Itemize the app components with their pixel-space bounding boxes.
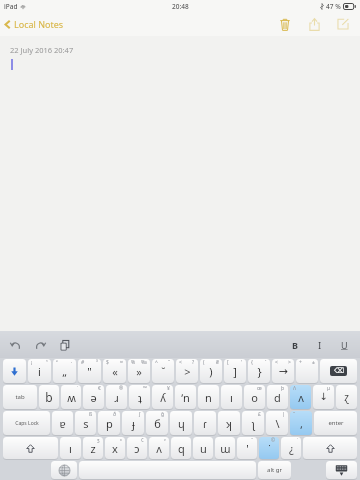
button[interactable]: q xyxy=(171,437,191,459)
staticText: ˣ xyxy=(120,437,122,444)
staticText: } xyxy=(257,364,262,379)
button[interactable]: New note xyxy=(331,12,355,36)
button[interactable]: n xyxy=(198,385,219,409)
button[interactable]: Share xyxy=(302,12,326,36)
staticText: œ xyxy=(257,385,262,392)
button[interactable]: ß xyxy=(75,411,96,435)
button[interactable]: Local Notes xyxy=(4,18,64,30)
button[interactable]: ¥ xyxy=(152,385,173,409)
staticText: ʼn xyxy=(181,390,190,405)
button[interactable]: ˙ xyxy=(61,385,81,409)
staticText: ɟ xyxy=(132,416,135,431)
button[interactable]: ™ xyxy=(129,385,150,409)
staticText: ɐ xyxy=(59,416,66,431)
staticText: ` xyxy=(265,359,267,366)
staticText: d xyxy=(274,390,281,405)
button[interactable]: ǧ xyxy=(146,411,168,435)
staticText: " xyxy=(87,364,92,379)
staticText: > xyxy=(184,364,191,379)
button[interactable]: < xyxy=(176,359,198,383)
staticText: ? xyxy=(192,359,195,366)
staticText: б xyxy=(154,416,161,431)
button[interactable]: ( xyxy=(200,359,222,383)
staticText: ® xyxy=(119,385,124,392)
button[interactable]: ² xyxy=(53,359,76,383)
staticText: ˝ xyxy=(168,359,171,366)
staticText: ˘ xyxy=(161,364,166,379)
button[interactable]: + xyxy=(296,359,318,383)
button[interactable]: Enter xyxy=(314,411,357,435)
button[interactable]: ˙ xyxy=(281,437,301,459)
staticText: [ xyxy=(227,359,229,366)
button[interactable]: | xyxy=(266,411,288,435)
staticText: ˙ xyxy=(77,385,78,392)
button[interactable]: £ xyxy=(242,411,264,435)
button[interactable]: ʒ xyxy=(83,437,103,459)
button[interactable]: € xyxy=(83,385,104,409)
staticText: o xyxy=(251,390,258,405)
button[interactable]: œ xyxy=(244,385,265,409)
button[interactable]: ı xyxy=(221,385,242,409)
button[interactable]: ɥ xyxy=(170,411,192,435)
button[interactable]: b xyxy=(39,385,59,409)
staticText: 47 % xyxy=(326,2,341,11)
button[interactable]: # xyxy=(78,359,101,383)
staticText: Λ xyxy=(293,385,297,392)
button[interactable]: Alt Gr xyxy=(258,461,291,479)
staticText: % xyxy=(131,359,136,366)
button[interactable]: Space xyxy=(79,461,256,479)
button[interactable]: © xyxy=(259,437,279,459)
button[interactable]: % xyxy=(128,359,150,383)
button[interactable]: ® xyxy=(106,385,127,409)
button[interactable]: ɯ xyxy=(215,437,235,459)
button[interactable]: u xyxy=(193,437,213,459)
staticText: | xyxy=(282,411,285,418)
button[interactable]: [ xyxy=(224,359,246,383)
button[interactable]: Backspace xyxy=(320,359,357,383)
staticText: ↓ xyxy=(319,391,328,403)
button[interactable]: Paste xyxy=(54,334,76,356)
button[interactable]: ¢ xyxy=(127,437,147,459)
button[interactable]: ɾ xyxy=(194,411,216,435)
button[interactable]: Change keyboard xyxy=(51,461,77,479)
button[interactable]: Λ xyxy=(290,385,311,409)
button[interactable]: Hide keyboard xyxy=(326,461,357,479)
button[interactable]: I xyxy=(311,336,328,353)
button[interactable]: ʃ xyxy=(122,411,144,435)
button[interactable]: Redo xyxy=(29,334,51,356)
button[interactable]: µ xyxy=(313,385,334,409)
staticText: ^ xyxy=(155,359,158,366)
button[interactable]: ¡ xyxy=(28,359,51,383)
button[interactable]: Shift xyxy=(3,437,58,459)
button[interactable]: ı xyxy=(60,437,81,459)
staticText: ɀ xyxy=(344,390,349,404)
staticText: ʎ xyxy=(160,390,166,405)
button[interactable]: ɐ xyxy=(52,411,73,435)
button[interactable]: Emoji xyxy=(3,359,26,383)
button[interactable]: ɀ xyxy=(336,385,357,409)
button[interactable]: $ xyxy=(103,359,126,383)
button[interactable]: Delete note xyxy=(273,12,297,36)
staticText: ı xyxy=(230,390,233,405)
button[interactable]: Undo xyxy=(4,334,26,356)
button[interactable]: Shift xyxy=(303,437,357,459)
button[interactable]: ˣ xyxy=(105,437,125,459)
button[interactable]: ᵛ xyxy=(149,437,169,459)
button[interactable]: { xyxy=(248,359,270,383)
button[interactable]: ^ xyxy=(152,359,174,383)
staticText: » xyxy=(136,364,142,379)
button[interactable]: < xyxy=(272,359,294,383)
button[interactable]: Tab xyxy=(3,385,37,409)
staticText: ' xyxy=(241,359,243,366)
button[interactable]: ˝ xyxy=(290,411,312,435)
button[interactable]: ʞ xyxy=(218,411,240,435)
button[interactable]: þ xyxy=(267,385,288,409)
button[interactable]: U xyxy=(336,336,353,353)
staticText: alt gr xyxy=(267,466,282,474)
button[interactable]: Caps Lock xyxy=(3,411,50,435)
button[interactable]: ʼn xyxy=(175,385,196,409)
button[interactable]: B xyxy=(286,336,303,353)
button[interactable]: ð xyxy=(98,411,120,435)
staticText: u xyxy=(200,441,207,456)
button[interactable]: ˜ xyxy=(237,437,257,459)
